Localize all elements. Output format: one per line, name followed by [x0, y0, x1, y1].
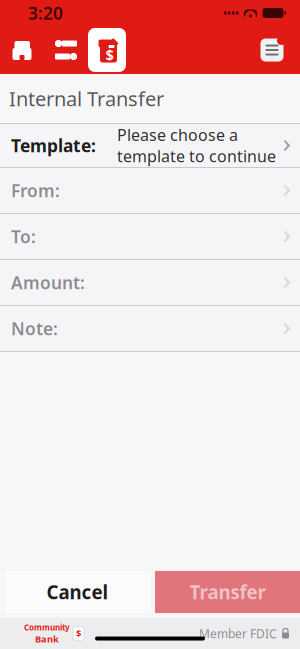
staticText: $ — [105, 45, 113, 64]
staticText: $ — [76, 627, 81, 640]
staticText: Member FDIC — [199, 625, 277, 641]
button[interactable]: Home — [0, 28, 44, 72]
staticText: 3:20 — [28, 1, 63, 24]
staticText: Amount: — [11, 271, 85, 294]
staticText: Internal Transfer — [9, 85, 164, 112]
staticText: Bank — [35, 633, 59, 645]
button[interactable]: From: — [0, 168, 300, 213]
staticText: Community — [24, 622, 70, 633]
staticText: Please choose a template to continue — [117, 124, 276, 167]
staticText: To: — [11, 225, 36, 248]
button[interactable]: Transfers — [44, 28, 88, 72]
button[interactable]: Internal Transfer — [88, 26, 126, 74]
button[interactable]: Cancel — [5, 571, 150, 613]
staticText: Cancel — [46, 580, 108, 604]
button[interactable]: Transfer — [155, 571, 300, 613]
staticText: Transfer — [189, 580, 265, 604]
button[interactable]: Amount: — [0, 260, 300, 305]
staticText: Note: — [11, 317, 58, 340]
button[interactable]: Template: — [0, 124, 300, 167]
staticText: Template: — [11, 134, 96, 157]
button[interactable]: To: — [0, 214, 300, 259]
staticText: From: — [11, 179, 60, 202]
button[interactable]: Menu — [250, 28, 294, 72]
button[interactable]: Note: — [0, 306, 300, 351]
